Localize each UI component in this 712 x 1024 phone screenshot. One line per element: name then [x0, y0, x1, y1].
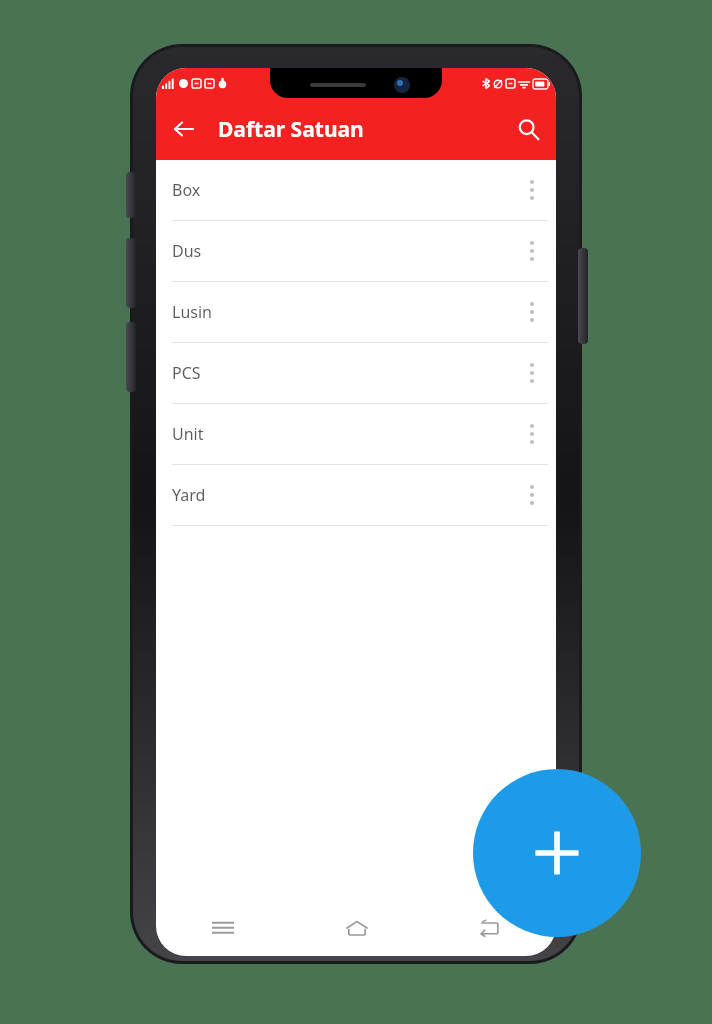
button[interactable]: Yard: [156, 465, 556, 525]
button[interactable]: More options: [512, 170, 552, 210]
button[interactable]: More options: [512, 414, 552, 454]
staticText: Dus: [172, 240, 202, 262]
button[interactable]: Search: [506, 107, 550, 151]
button[interactable]: More options: [512, 353, 552, 393]
button[interactable]: Home: [335, 906, 379, 950]
button[interactable]: More options: [512, 292, 552, 332]
button[interactable]: More options: [512, 231, 552, 271]
staticText: Unit: [172, 423, 204, 445]
button[interactable]: PCS: [156, 343, 556, 403]
staticText: Box: [172, 179, 201, 201]
staticText: Daftar Satuan: [218, 115, 364, 144]
staticText: Lusin: [172, 301, 212, 323]
button[interactable]: Back: [468, 906, 512, 950]
button[interactable]: Add: [473, 769, 641, 937]
button[interactable]: Dus: [156, 221, 556, 281]
button[interactable]: Back: [162, 107, 206, 151]
staticText: Yard: [172, 484, 206, 506]
button[interactable]: Unit: [156, 404, 556, 464]
staticText: PCS: [172, 362, 201, 384]
button[interactable]: Lusin: [156, 282, 556, 342]
button[interactable]: Box: [156, 160, 556, 220]
button[interactable]: More options: [512, 475, 552, 515]
button[interactable]: Recent apps: [201, 906, 245, 950]
